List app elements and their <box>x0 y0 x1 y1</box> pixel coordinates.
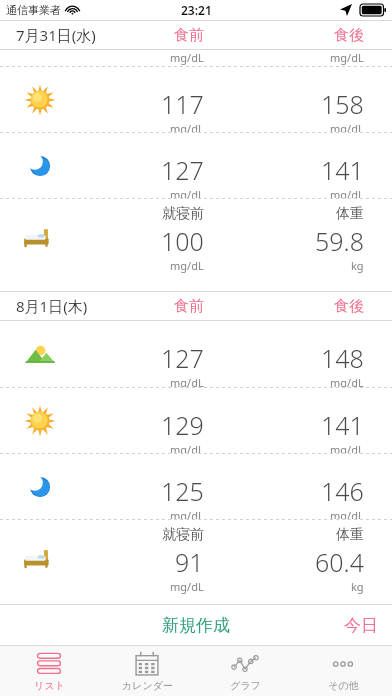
staticText: 就寝前 <box>162 526 204 544</box>
staticText: 141 <box>321 153 364 187</box>
staticText: 129 <box>161 408 204 442</box>
staticText: 食前 <box>174 297 204 316</box>
button[interactable]: リスト <box>0 646 98 696</box>
staticText: 117 <box>161 87 204 121</box>
staticText: mg/dL <box>170 121 204 132</box>
button[interactable]: 117 <box>0 67 392 132</box>
staticText: mg/dL <box>330 442 364 453</box>
staticText: 158 <box>321 87 364 121</box>
staticText: 体重 <box>336 205 364 223</box>
staticText: 148 <box>321 341 364 375</box>
staticText: mg/dL <box>330 121 364 132</box>
staticText: 146 <box>321 474 364 508</box>
staticText: 体重 <box>336 526 364 544</box>
staticText: 食後 <box>334 297 364 316</box>
staticText: mg/dL <box>170 579 204 594</box>
staticText: 60.4 <box>315 545 364 579</box>
staticText: mg/dL <box>170 442 204 453</box>
button[interactable]: グラフ <box>196 646 294 696</box>
staticText: 125 <box>161 474 204 508</box>
staticText: グラフ <box>230 679 261 692</box>
staticText: リスト <box>34 679 65 692</box>
staticText: kg <box>351 258 364 273</box>
staticText: 59.8 <box>315 224 364 258</box>
staticText: mg/dL <box>170 508 204 519</box>
staticText: 新規作成 <box>162 615 230 636</box>
button[interactable]: 125 <box>0 454 392 519</box>
staticText: 食後 <box>334 26 364 45</box>
staticText: 23:21 <box>181 2 212 18</box>
staticText: mg/dL <box>170 50 204 65</box>
staticText: 就寝前 <box>162 205 204 223</box>
staticText: 通信事業者 <box>6 3 61 17</box>
staticText: mg/dL <box>330 375 364 387</box>
button[interactable]: 129 <box>0 388 392 453</box>
button[interactable]: 新規作成 <box>148 609 244 642</box>
staticText: mg/dL <box>330 50 364 65</box>
staticText: mg/dL <box>170 187 204 198</box>
staticText: 7月31日(水) <box>16 25 96 45</box>
staticText: mg/dL <box>170 258 204 273</box>
button[interactable]: 127 <box>0 321 392 387</box>
button[interactable]: その他 <box>294 646 392 696</box>
staticText: 91 <box>175 545 204 579</box>
staticText: mg/dL <box>330 187 364 198</box>
staticText: 食前 <box>174 26 204 45</box>
staticText: 127 <box>161 153 204 187</box>
staticText: カレンダー <box>122 679 173 692</box>
staticText: 8月1日(木) <box>16 296 88 316</box>
staticText: mg/dL <box>330 508 364 519</box>
staticText: 100 <box>161 224 204 258</box>
staticText: その他 <box>328 679 359 692</box>
button[interactable]: 今日 <box>330 609 392 642</box>
button[interactable]: 就寝前 <box>0 199 392 277</box>
button[interactable]: 127 <box>0 133 392 198</box>
button[interactable]: 就寝前 <box>0 520 392 598</box>
button[interactable]: カレンダー <box>98 646 196 696</box>
staticText: 今日 <box>344 615 378 636</box>
staticText: mg/dL <box>170 375 204 387</box>
staticText: 141 <box>321 408 364 442</box>
staticText: kg <box>351 579 364 594</box>
staticText: 127 <box>161 341 204 375</box>
